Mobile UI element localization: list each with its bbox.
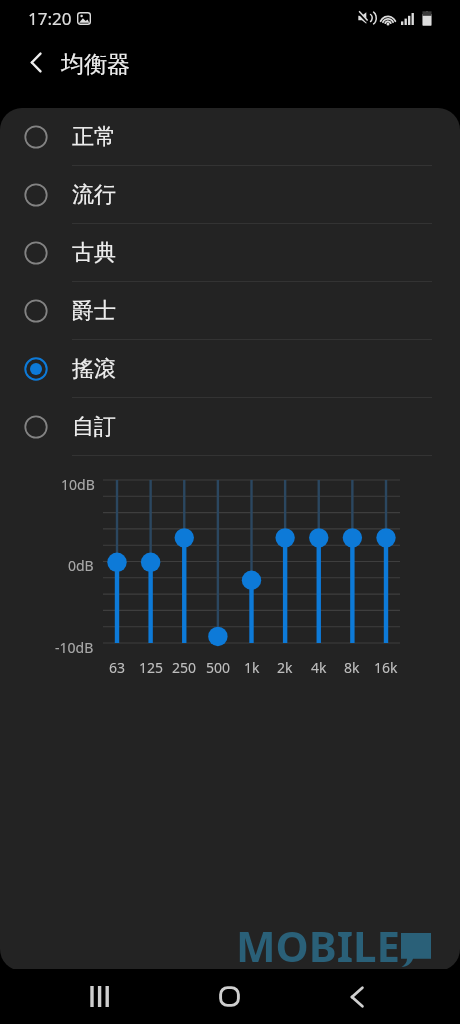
staticText: 爵士 (72, 297, 116, 325)
staticText: 125 (139, 658, 164, 677)
staticText: 0dB (68, 556, 94, 575)
button[interactable]: 8k Hz band level (336, 474, 368, 648)
button[interactable]: Back (327, 976, 387, 1017)
button[interactable]: 250 Hz band level (168, 474, 200, 648)
button[interactable]: 搖滾 (0, 340, 460, 398)
staticText: 流行 (72, 181, 116, 209)
button[interactable]: 2k Hz band level (269, 474, 301, 648)
staticText: 8k (344, 658, 360, 677)
staticText: 古典 (72, 239, 116, 267)
button[interactable]: Home (199, 976, 259, 1017)
button[interactable]: Recent apps (70, 976, 130, 1017)
staticText: 正常 (72, 123, 116, 151)
staticText: 搖滾 (72, 355, 116, 383)
button[interactable]: 500 Hz band level (202, 474, 234, 648)
button[interactable]: 爵士 (0, 282, 460, 340)
staticText: 250 (172, 658, 197, 677)
button[interactable]: 4k Hz band level (303, 474, 335, 648)
button[interactable]: 125 Hz band level (135, 474, 167, 648)
button[interactable]: 1k Hz band level (236, 474, 268, 648)
staticText: 4k (311, 658, 327, 677)
button[interactable]: 16k Hz band level (370, 474, 402, 648)
staticText: 均衡器 (61, 50, 130, 79)
staticText: MOBILE (236, 917, 401, 971)
staticText: 17:20 (28, 7, 72, 30)
staticText: 16k (374, 658, 398, 677)
staticText: 1k (244, 658, 260, 677)
button[interactable]: 自訂 (0, 398, 460, 456)
staticText: 63 (109, 658, 126, 677)
button[interactable]: 古典 (0, 224, 460, 282)
button[interactable]: 63 Hz band level (101, 474, 133, 648)
staticText: -10dB (55, 638, 94, 657)
staticText: 10dB (61, 475, 95, 494)
staticText: 500 (206, 658, 231, 677)
button[interactable]: 流行 (0, 166, 460, 224)
staticText: 自訂 (72, 413, 116, 441)
button[interactable]: 正常 (0, 108, 460, 166)
staticText: 2k (277, 658, 293, 677)
button[interactable]: Back (13, 40, 58, 85)
